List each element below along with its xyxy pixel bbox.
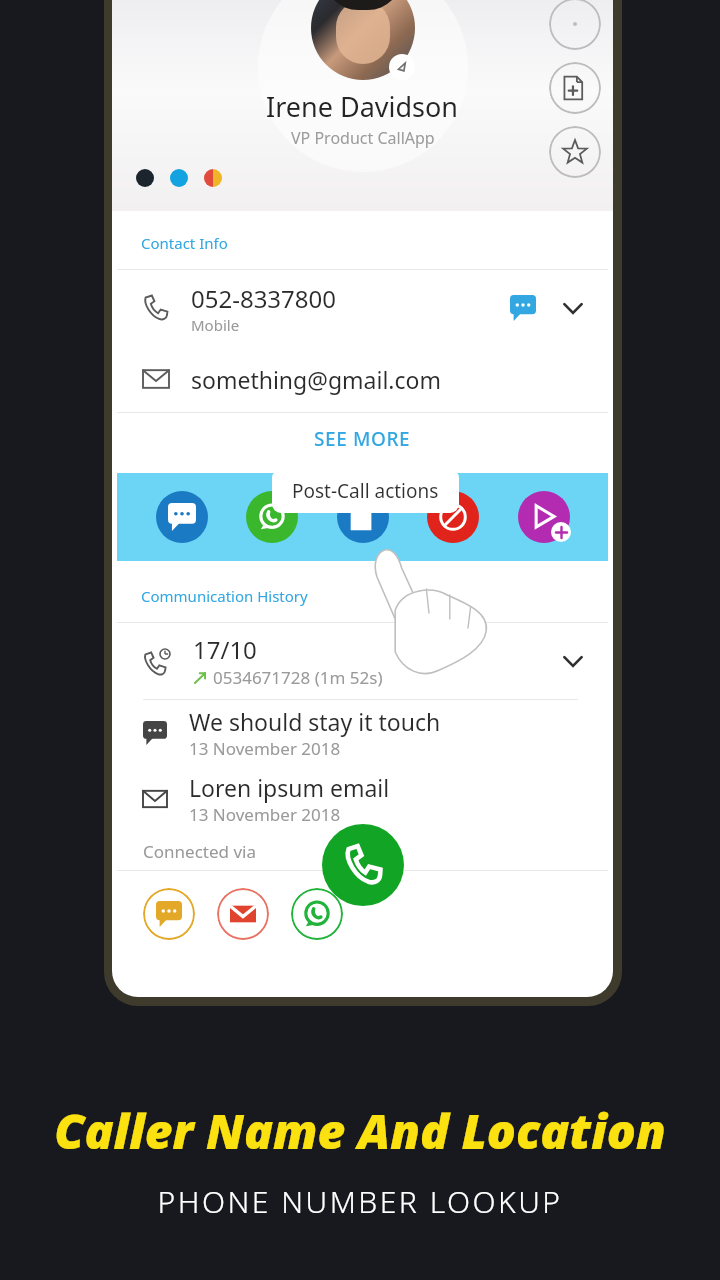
button[interactable]: Block contact — [427, 491, 479, 543]
button[interactable]: Add note — [337, 491, 389, 543]
staticText: Mobile — [191, 315, 240, 335]
button[interactable]: Send message — [506, 291, 540, 325]
staticText: VP Product CallApp — [291, 127, 435, 149]
staticText: Loren ipsum email — [189, 772, 390, 803]
staticText: We should stay it touch — [189, 706, 441, 737]
staticText: 17/10 — [193, 633, 257, 666]
staticText: Communication History — [141, 586, 308, 606]
button[interactable]: WhatsApp channel — [291, 888, 343, 940]
button[interactable]: Gmail channel — [217, 888, 269, 940]
button[interactable]: Add video — [518, 491, 570, 543]
staticText: PHONE NUMBER LOOKUP — [0, 1181, 720, 1222]
staticText: Irene Davidson — [266, 88, 459, 125]
button[interactable]: Loren ipsum email — [117, 766, 608, 832]
button[interactable]: Expand history — [556, 644, 590, 678]
button[interactable]: Call — [322, 824, 404, 906]
button[interactable]: something@gmail.com — [117, 346, 608, 412]
staticText: 052-8337800 — [191, 282, 337, 315]
button[interactable]: Add note — [549, 62, 601, 114]
staticText: 0534671728 (1m 52s) — [213, 666, 383, 689]
button[interactable]: WhatsApp — [246, 491, 298, 543]
button[interactable]: SMS channel — [143, 888, 195, 940]
staticText: Caller Name And Location — [0, 1098, 720, 1163]
button[interactable]: More options — [549, 0, 601, 50]
staticText: Connected via — [143, 840, 256, 863]
staticText: Contact Info — [141, 233, 228, 253]
staticText: Post-Call actions — [292, 478, 439, 504]
staticText: SEE MORE — [314, 426, 411, 452]
button[interactable]: Send SMS — [156, 491, 208, 543]
button[interactable]: 052-8337800 — [117, 270, 608, 346]
staticText: something@gmail.com — [191, 364, 441, 395]
staticText: 13 November 2018 — [189, 803, 341, 826]
staticText: 13 November 2018 — [189, 737, 341, 760]
button[interactable]: Expand — [556, 291, 590, 325]
button[interactable]: Add to favorites — [549, 126, 601, 178]
button[interactable]: We should stay it touch — [117, 700, 608, 766]
button[interactable]: SEE MORE — [117, 413, 608, 465]
button[interactable]: Edit photo — [389, 54, 415, 80]
button[interactable]: 17/10 — [117, 623, 608, 699]
